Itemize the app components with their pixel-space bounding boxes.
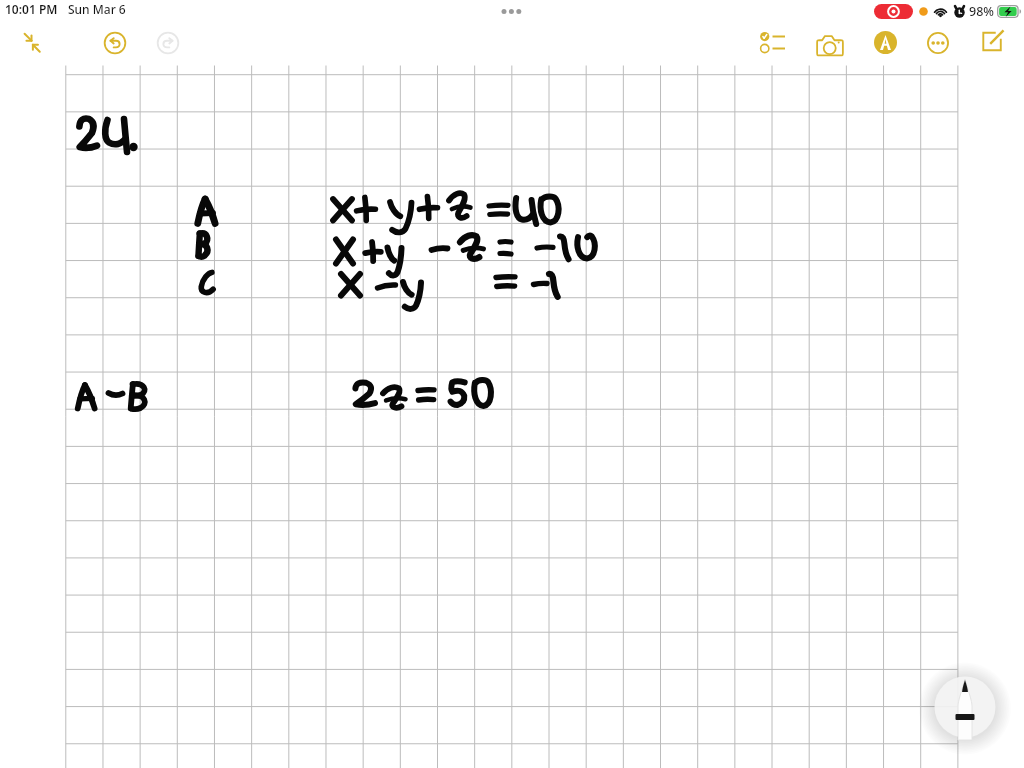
staticText: 98% (969, 3, 994, 20)
button[interactable]: Camera (816, 31, 844, 59)
button[interactable]: Pen style (873, 30, 898, 55)
button[interactable]: Undo (104, 32, 126, 54)
button[interactable]: Screen recording (874, 4, 913, 19)
button[interactable]: More options (926, 31, 950, 55)
button[interactable]: Checklist (760, 30, 785, 55)
button[interactable]: Pen tool (926, 668, 1004, 746)
staticText: 10:01 PM (5, 1, 58, 17)
button[interactable]: Redo (157, 32, 179, 54)
staticText: Sun Mar 6 (68, 1, 126, 17)
button[interactable]: New note (981, 30, 1004, 53)
button[interactable]: Collapse (20, 31, 43, 54)
